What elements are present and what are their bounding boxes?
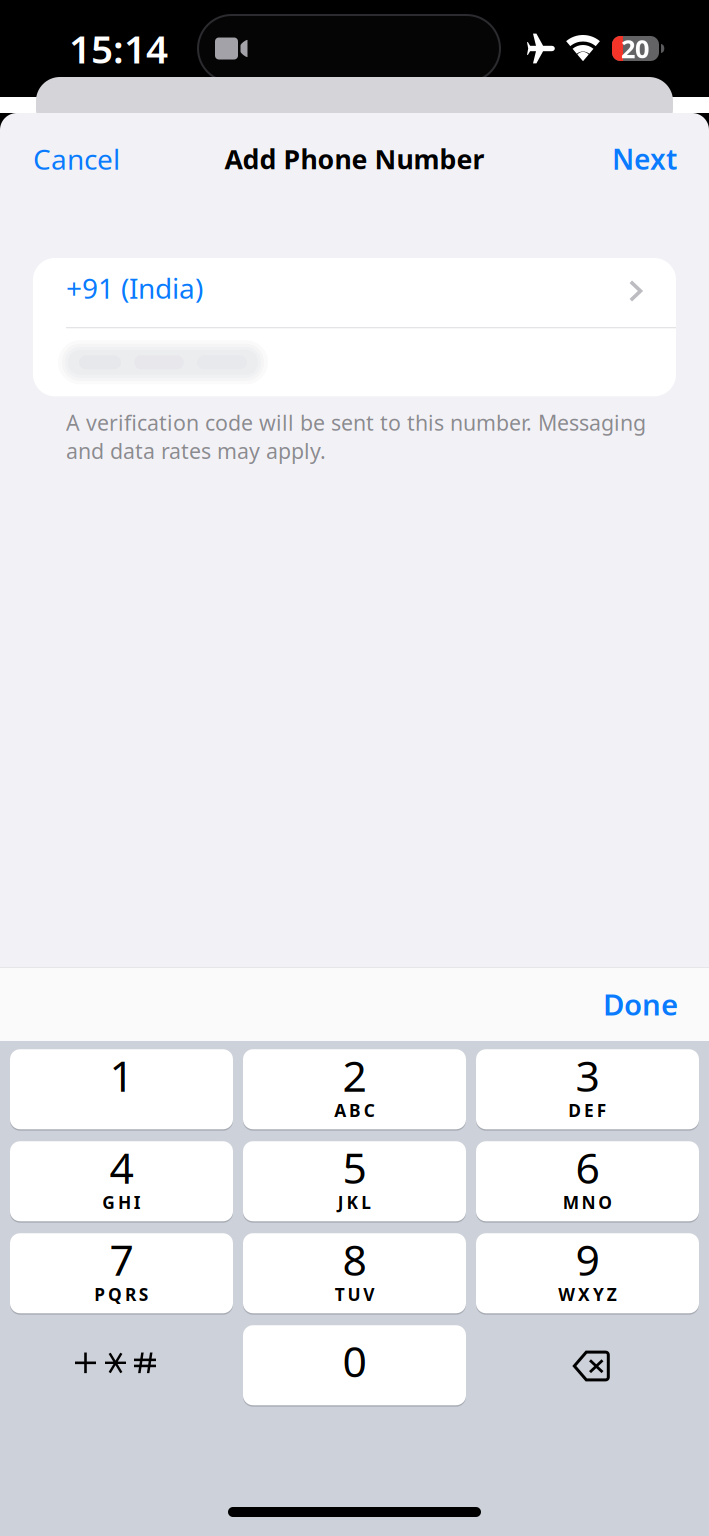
button[interactable]: Delete <box>476 1326 699 1406</box>
button[interactable]: 7 <box>10 1234 233 1314</box>
button[interactable]: Plus star hash <box>10 1326 233 1406</box>
button[interactable]: Cancel <box>0 124 136 194</box>
button[interactable]: 9 <box>476 1234 699 1314</box>
staticText: MNO <box>563 1191 612 1214</box>
staticText: 5 <box>342 1139 366 1196</box>
button[interactable]: 1 <box>10 1050 233 1130</box>
button[interactable]: 0 <box>243 1326 466 1406</box>
staticText: Add Phone Number <box>224 141 484 177</box>
staticText: Done <box>603 984 678 1023</box>
staticText: WXYZ <box>558 1283 617 1306</box>
button[interactable]: 3 <box>476 1050 699 1130</box>
staticText: 7 <box>109 1231 133 1288</box>
staticText: A verification code will be sent to this… <box>66 408 646 465</box>
staticText: JKL <box>338 1191 371 1214</box>
button[interactable]: +91 (India) <box>33 258 676 327</box>
button[interactable]: 2 <box>243 1050 466 1130</box>
button[interactable]: 8 <box>243 1234 466 1314</box>
staticText: TUV <box>335 1283 374 1306</box>
staticText: 20 <box>621 32 649 65</box>
staticText: 3 <box>575 1047 599 1104</box>
staticText: ABC <box>334 1099 375 1122</box>
staticText: 15:14 <box>69 23 168 74</box>
staticText: 8 <box>342 1231 366 1288</box>
staticText: +91 (India) <box>66 269 203 307</box>
staticText: 0 <box>342 1332 366 1389</box>
staticText: Next <box>612 140 677 178</box>
staticText: PQRS <box>94 1283 149 1306</box>
button[interactable]: Done <box>579 964 709 1043</box>
staticText: 9 <box>575 1231 599 1288</box>
staticText: GHI <box>102 1191 141 1214</box>
button[interactable]: Next <box>596 124 709 194</box>
button[interactable]: 4 <box>10 1142 233 1222</box>
staticText: 1 <box>109 1047 133 1104</box>
staticText: Cancel <box>33 140 120 178</box>
button[interactable]: 5 <box>243 1142 466 1222</box>
staticText: 2 <box>342 1047 366 1104</box>
staticText: DEF <box>568 1099 607 1122</box>
button[interactable]: 6 <box>476 1142 699 1222</box>
staticText: 4 <box>109 1139 133 1196</box>
staticText: 6 <box>575 1139 599 1196</box>
